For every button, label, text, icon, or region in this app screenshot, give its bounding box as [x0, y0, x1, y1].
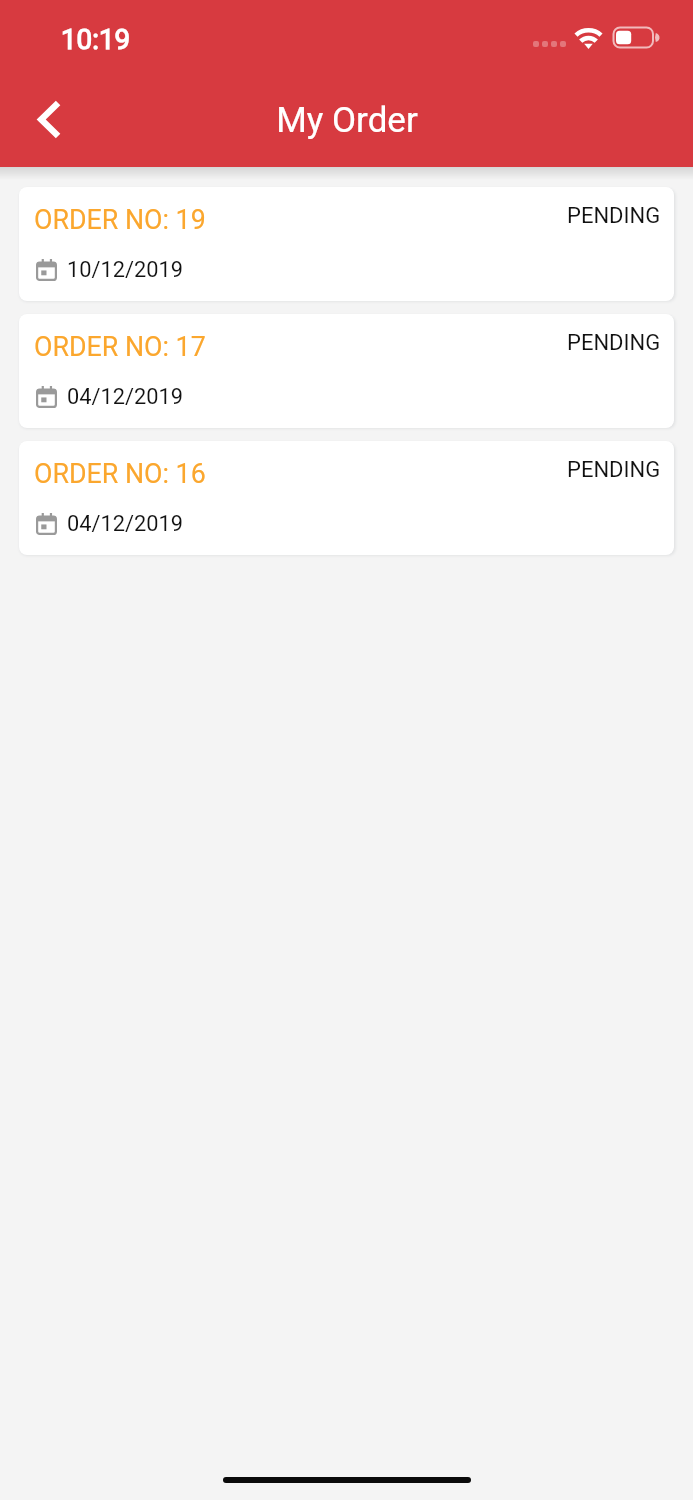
staticText: My Order: [276, 100, 418, 141]
staticText: 04/12/2019: [67, 384, 183, 410]
button[interactable]: ORDER NO: 16: [19, 441, 674, 555]
staticText: PENDING: [567, 203, 661, 229]
staticText: 04/12/2019: [67, 511, 183, 537]
staticText: 10:19: [61, 23, 131, 56]
staticText: ORDER NO: 17: [34, 331, 206, 362]
staticText: 10/12/2019: [67, 257, 183, 283]
staticText: ORDER NO: 16: [34, 458, 206, 489]
staticText: PENDING: [567, 330, 661, 356]
button[interactable]: ORDER NO: 17: [19, 314, 674, 428]
button[interactable]: Back: [20, 91, 76, 147]
staticText: ORDER NO: 19: [34, 204, 206, 235]
staticText: PENDING: [567, 457, 661, 483]
button[interactable]: ORDER NO: 19: [19, 187, 674, 301]
